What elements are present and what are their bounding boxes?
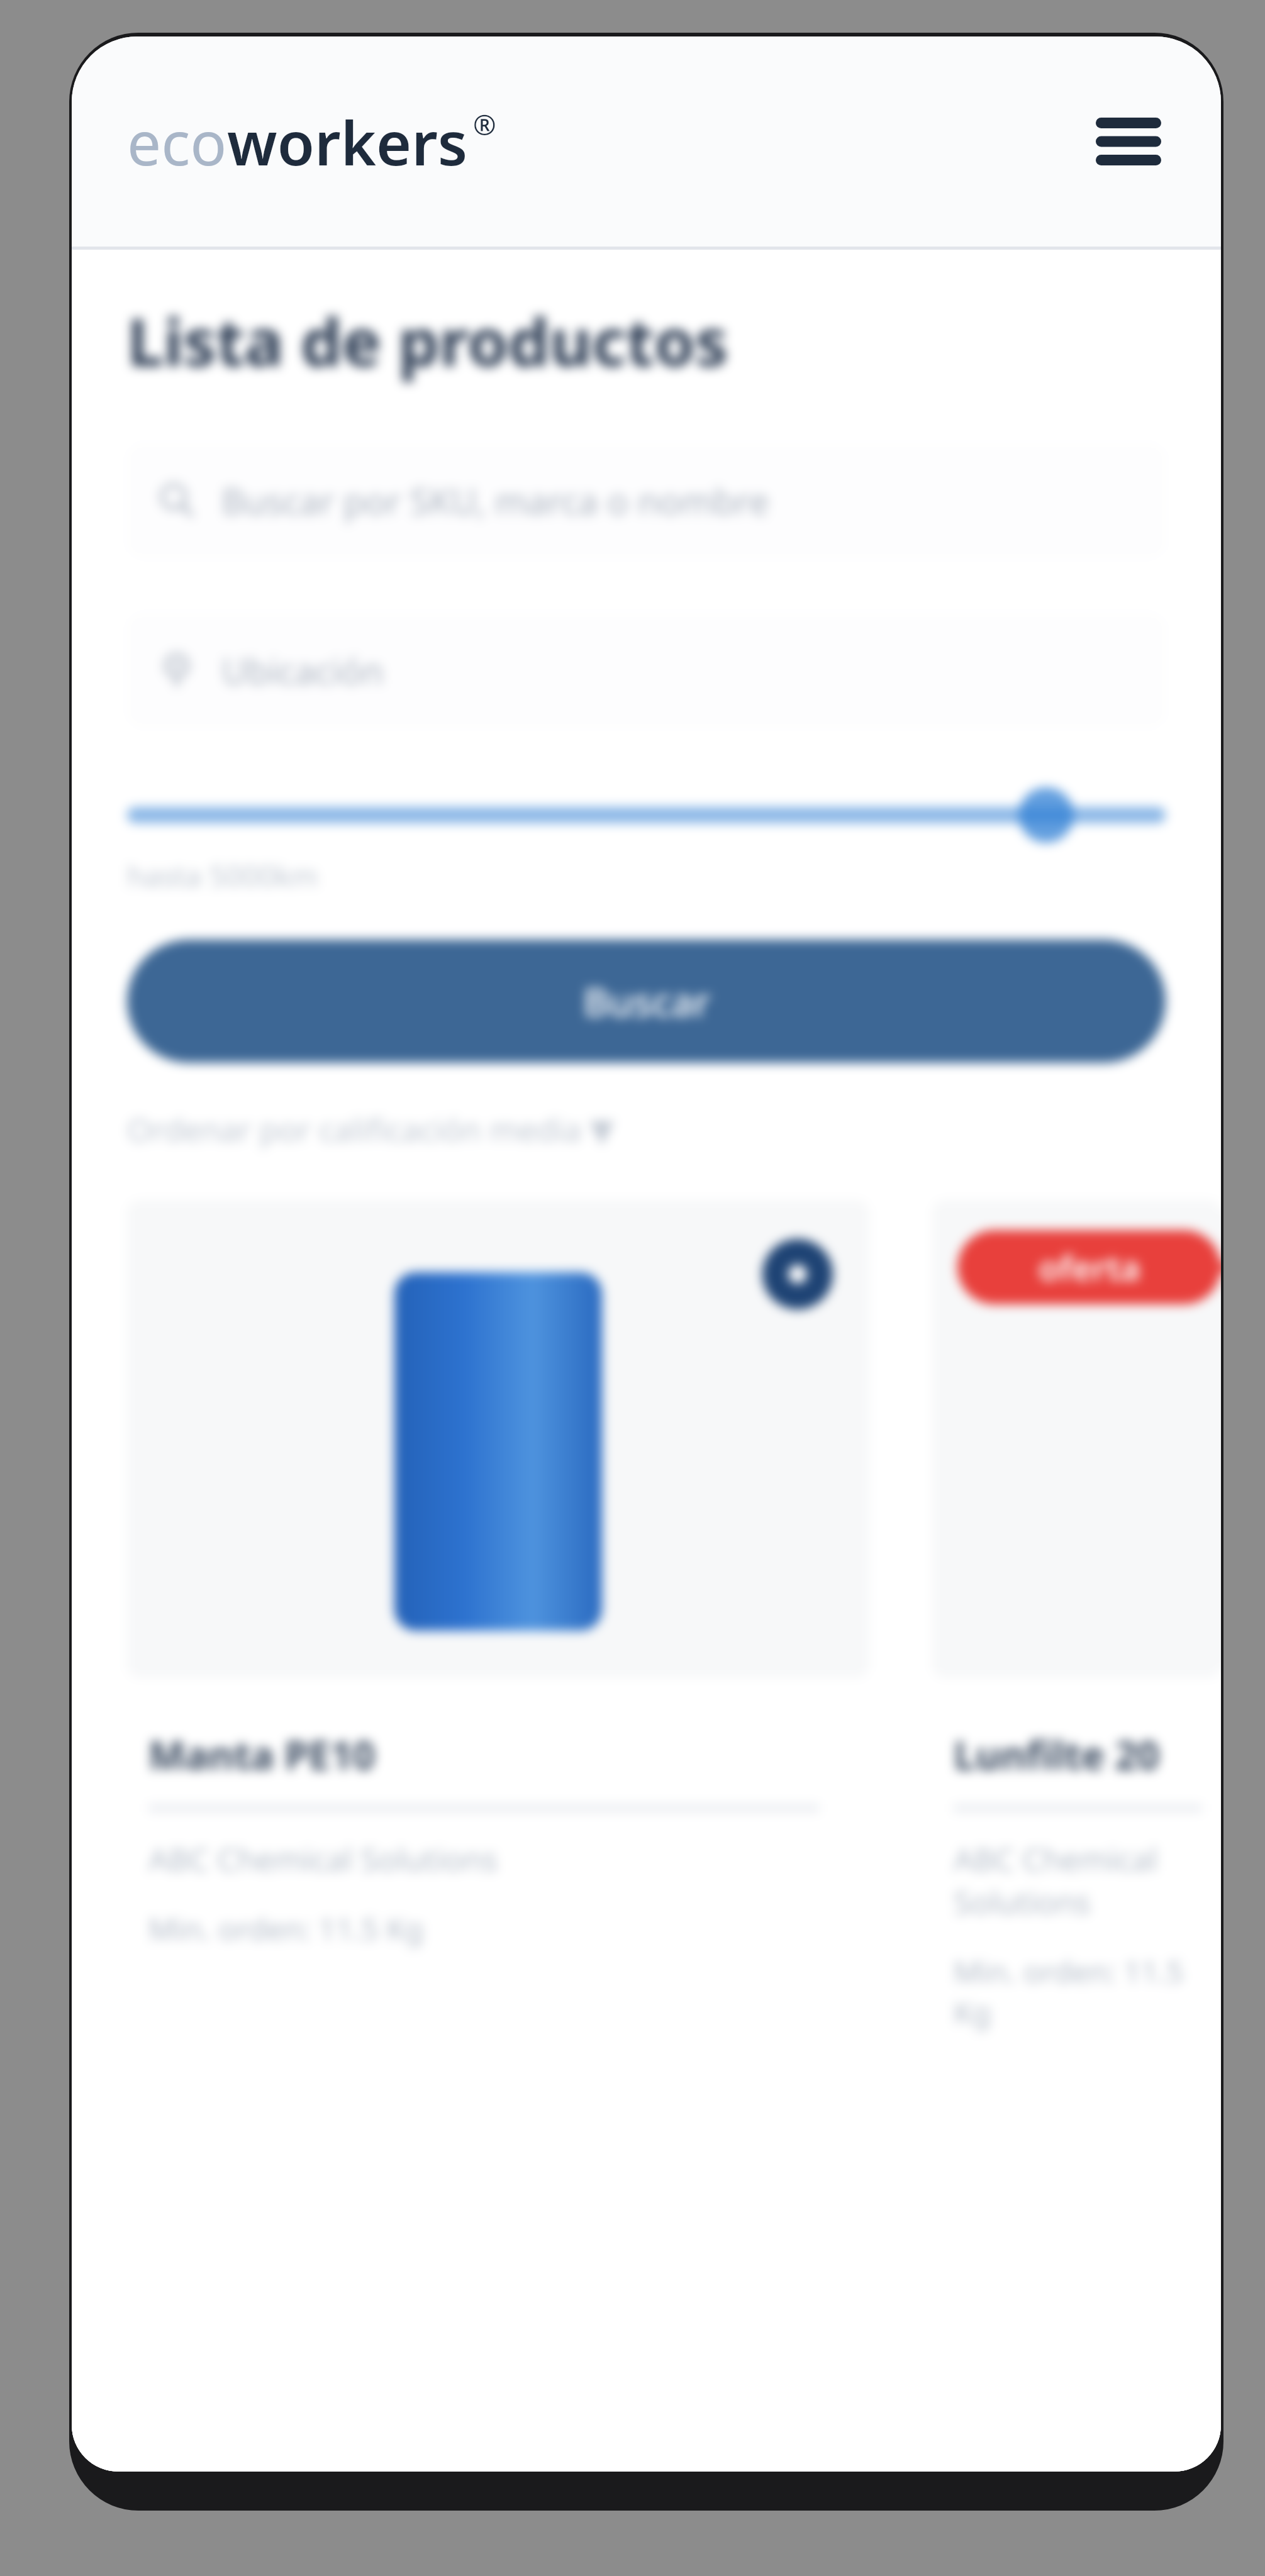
staticText: Ordenar por calificación media ▼: [127, 1108, 615, 1151]
button[interactable]: Añadir al carrito: [762, 1239, 833, 1309]
button[interactable]: Ubicación: [127, 613, 1166, 728]
staticText: ABC Chemical Solutions: [954, 1838, 1221, 1923]
staticText: Buscar: [583, 975, 710, 1028]
button[interactable]: Añadir al carrito: [127, 1200, 869, 1949]
staticText: Ubicación: [221, 647, 384, 694]
staticText: Lunfilte 20: [954, 1728, 1160, 1781]
staticText: eco: [127, 101, 227, 183]
button[interactable]: Buscar: [127, 940, 1166, 1063]
staticText: oferta: [1039, 1244, 1140, 1291]
staticText: Manta PE10: [148, 1728, 376, 1781]
staticText: ®: [473, 106, 496, 143]
button[interactable]: Menú: [1081, 94, 1176, 189]
button[interactable]: [127, 788, 1166, 842]
staticText: ABC Chemical Solutions: [148, 1838, 498, 1880]
staticText: workers: [227, 101, 468, 183]
staticText: hasta 5000km: [127, 856, 318, 896]
staticText: Min. orden: 11.5 Kg: [954, 1951, 1221, 2033]
button[interactable]: Buscar por SKU, marca o nombre: [127, 443, 1166, 558]
button[interactable]: oferta: [932, 1200, 1221, 2033]
staticText: Min. orden: 11.5 Kg: [148, 1908, 424, 1949]
button[interactable]: eco: [127, 101, 496, 183]
staticText: Lista de productos: [127, 296, 728, 386]
staticText: Buscar por SKU, marca o nombre: [221, 477, 769, 525]
